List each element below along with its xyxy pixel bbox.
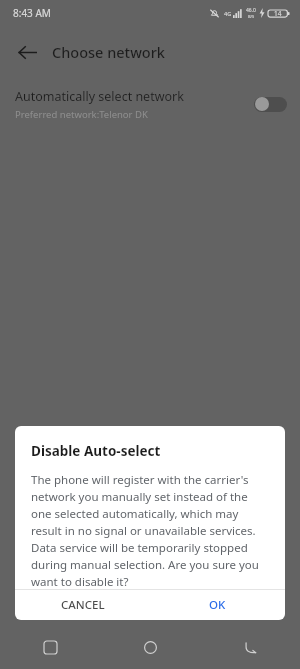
staticText: The phone will register with the carrier… <box>31 472 271 589</box>
staticText: 4G <box>224 10 232 17</box>
button[interactable]: Automatically select network <box>0 78 300 130</box>
button[interactable]: Back <box>10 35 44 69</box>
staticText: B/S <box>248 14 255 19</box>
staticText: OK <box>209 597 226 613</box>
staticText: Disable Auto-select <box>31 442 161 460</box>
staticText: Choose network <box>52 42 165 62</box>
staticText: Automatically select network <box>15 88 184 105</box>
button[interactable]: OK <box>150 590 285 620</box>
staticText: 46.0 <box>246 7 256 14</box>
button[interactable]: Home <box>100 625 200 669</box>
staticText: 14 <box>274 9 282 18</box>
button[interactable]: Recents <box>0 625 100 669</box>
staticText: CANCEL <box>61 597 105 613</box>
button[interactable]: Back <box>200 625 300 669</box>
staticText: 8:43 AM <box>13 6 51 20</box>
button[interactable]: Automatically select network toggle <box>254 96 287 112</box>
staticText: Preferred network:Telenor DK <box>15 108 148 121</box>
button[interactable]: CANCEL <box>15 590 150 620</box>
